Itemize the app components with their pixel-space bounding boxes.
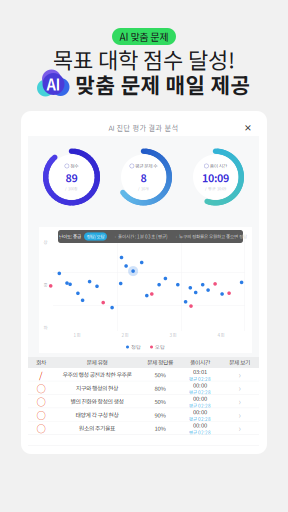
staticText: 중: [43, 282, 47, 288]
staticText: ○: [36, 421, 45, 435]
staticText: ○: [36, 408, 45, 422]
staticText: 00:00: [193, 407, 207, 416]
staticText: 평균 문제 수: [135, 162, 157, 169]
staticText: / 100점: [65, 186, 78, 191]
staticText: 평균 02:28: [189, 389, 211, 396]
staticText: ›: [238, 369, 240, 380]
staticText: 문제 정답률: [147, 358, 173, 367]
staticText: 지구와 행성의 현상: [76, 384, 118, 392]
staticText: 태양계 각 구성 현상: [75, 411, 118, 419]
staticText: 난이도: 중급: [59, 233, 81, 240]
staticText: 80%: [154, 384, 165, 392]
staticText: ›: [238, 382, 240, 394]
staticText: ✕: [244, 123, 252, 133]
staticText: AI 진단 평가 결과 분석: [108, 122, 178, 133]
staticText: 90%: [154, 411, 165, 419]
button[interactable]: /: [28, 368, 259, 381]
staticText: 3회: [169, 332, 176, 338]
staticText: 별의 진화와 항성의 생성: [70, 397, 123, 406]
staticText: 1회: [73, 332, 80, 338]
staticText: / 10개: [138, 186, 149, 191]
staticText: /: [39, 368, 43, 381]
staticText: 상: [43, 239, 47, 246]
staticText: 우주의 행성 공전과 착한 우주론: [62, 370, 131, 379]
staticText: 회차: [36, 358, 46, 367]
button[interactable]: ○: [28, 381, 259, 395]
staticText: ○: [36, 395, 45, 408]
staticText: 2회: [121, 332, 128, 338]
staticText: 원소의 주기율표: [79, 424, 115, 433]
staticText: 오답: [155, 343, 165, 351]
staticText: 문제 유형: [86, 358, 107, 367]
staticText: / 평균 10:09: [205, 186, 226, 191]
staticText: 10:09: [202, 170, 229, 185]
staticText: · 누구의 정확률은 우월하고 좋으면 정답: [175, 233, 247, 240]
staticText: 평균 02:28: [189, 429, 211, 436]
button[interactable]: AI 맞춤 문제: [112, 28, 176, 45]
staticText: 풀이시간: [190, 358, 210, 367]
staticText: ○: [36, 381, 45, 395]
staticText: 00:00: [193, 381, 207, 389]
staticText: 점수: [70, 162, 78, 169]
staticText: 10%: [154, 424, 165, 433]
button[interactable]: ○: [28, 395, 259, 408]
staticText: 4회: [217, 332, 224, 338]
staticText: 맞춤 문제 매일 제공: [75, 69, 250, 99]
staticText: 89: [65, 170, 77, 185]
staticText: ›: [238, 422, 240, 434]
staticText: 풀이 시간: [210, 162, 227, 169]
staticText: 03:01: [193, 367, 207, 376]
staticText: AI 맞춤 문제: [119, 29, 168, 44]
staticText: 정답: [131, 343, 141, 351]
button[interactable]: Close: [241, 121, 255, 135]
button[interactable]: ○: [28, 422, 259, 435]
staticText: ›: [238, 409, 240, 421]
staticText: 50%: [154, 370, 165, 379]
staticText: 평균 02:28: [189, 376, 211, 382]
staticText: 평균 02:28: [189, 402, 211, 409]
staticText: AI: [46, 73, 60, 95]
staticText: 50%: [154, 397, 165, 406]
button[interactable]: ○: [28, 408, 259, 422]
staticText: 문제 보기: [229, 358, 250, 367]
staticText: 00:00: [193, 394, 207, 402]
staticText: 00:00: [193, 421, 207, 429]
staticText: 평균 02:28: [189, 416, 211, 422]
staticText: 목표 대학 점수 달성!: [53, 43, 235, 75]
staticText: 8: [140, 170, 146, 185]
staticText: 정답/오답: [86, 233, 104, 240]
staticText: ›: [238, 396, 240, 407]
staticText: · 풀이시간 : 1분 03초 (평균): [114, 233, 168, 240]
staticText: 하: [43, 324, 47, 331]
